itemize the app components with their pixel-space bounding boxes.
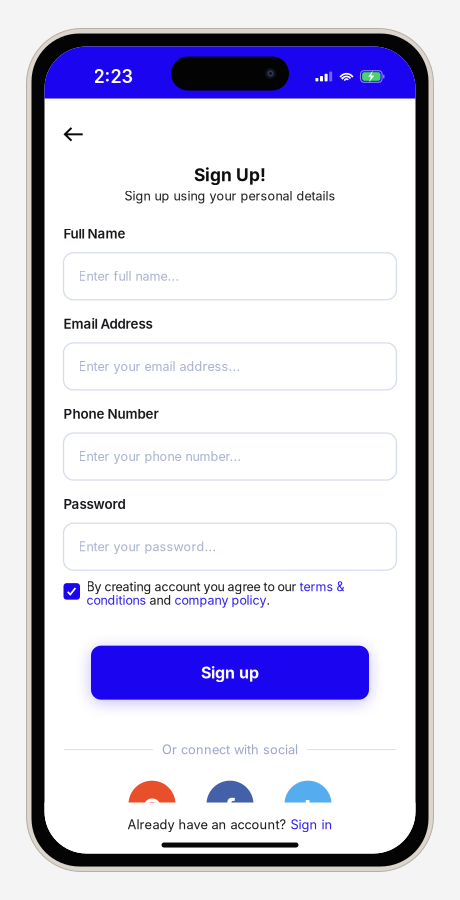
staticText: Password [63, 496, 125, 512]
staticText: Sign Up! [194, 164, 266, 185]
staticText: Enter your password... [78, 539, 216, 554]
button[interactable]: Accept terms and conditions [63, 583, 80, 600]
staticText: f [224, 791, 235, 825]
staticText: Sign up using your personal details [124, 188, 335, 204]
staticText: Already have an account? [127, 817, 286, 832]
button[interactable]: Back [63, 127, 83, 141]
button[interactable]: company policy [174, 593, 266, 608]
staticText: G [142, 793, 161, 823]
staticText: 2:23 [93, 66, 132, 87]
staticText: Sign up [201, 663, 259, 682]
button[interactable]: Sign up [91, 646, 369, 700]
staticText: By creating account you agree to our [86, 579, 299, 594]
staticText: Phone Number [63, 406, 158, 422]
staticText: Full Name [63, 226, 125, 242]
button[interactable]: terms & [299, 579, 344, 594]
button[interactable]: conditions [86, 593, 146, 608]
staticText: t [303, 793, 312, 823]
staticText: terms & [299, 579, 344, 594]
staticText: conditions [86, 593, 146, 608]
staticText: and [146, 593, 174, 608]
button[interactable]: Sign up with Google [128, 781, 175, 828]
button[interactable]: Enter your password... [63, 523, 396, 570]
staticText: Enter full name... [78, 269, 179, 284]
button[interactable]: Sign up with Facebook [206, 781, 253, 828]
staticText: Sign in [290, 817, 332, 832]
staticText: Or connect with social [162, 742, 298, 757]
button[interactable]: Enter your email address... [63, 343, 396, 390]
button[interactable]: Enter full name... [63, 253, 396, 300]
button[interactable]: Sign up with Twitter [284, 781, 331, 828]
staticText: . [266, 593, 270, 608]
button[interactable]: Enter your phone number... [63, 433, 396, 480]
staticText: Enter your email address... [78, 359, 240, 374]
staticText: Enter your phone number... [78, 449, 241, 464]
staticText: Email Address [63, 316, 152, 332]
staticText: company policy [174, 593, 266, 608]
button[interactable]: Sign in [290, 817, 332, 832]
